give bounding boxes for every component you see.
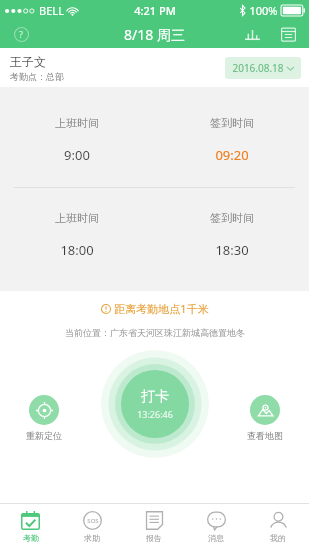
- staticText: 100%: [249, 3, 278, 18]
- staticText: 查看地图: [247, 430, 283, 441]
- staticText: 考勤: [23, 533, 39, 543]
- staticText: 上班时间: [55, 116, 99, 130]
- button[interactable]: 2016.08.18: [225, 57, 301, 79]
- staticText: 考勤点：总部: [10, 71, 64, 82]
- button[interactable]: 打卡: [101, 350, 209, 458]
- staticText: 18:00: [60, 241, 94, 259]
- staticText: 求助: [84, 533, 100, 543]
- button[interactable]: SOS: [61, 504, 123, 550]
- staticText: 2016.08.18: [232, 61, 284, 75]
- staticText: 当前位置：广东省天河区珠江新城高德置地冬: [65, 327, 245, 338]
- button[interactable]: 查看地图: [243, 391, 287, 445]
- staticText: 签到时间: [210, 116, 254, 130]
- staticText: 距离考勤地点1千米: [114, 301, 209, 316]
- staticText: 13:26:46: [137, 408, 173, 420]
- staticText: 报告: [146, 533, 162, 543]
- staticText: 签到时间: [210, 211, 254, 225]
- staticText: 消息: [208, 533, 224, 543]
- staticText: 09:20: [215, 146, 249, 164]
- staticText: BELL: [39, 3, 64, 18]
- staticText: ?: [19, 28, 23, 40]
- button[interactable]: 考勤: [0, 504, 61, 550]
- staticText: 我的: [270, 533, 286, 543]
- button[interactable]: 报告: [123, 504, 185, 550]
- staticText: 打卡: [141, 388, 169, 406]
- staticText: 8/18 周三: [124, 25, 185, 44]
- button[interactable]: 消息: [185, 504, 247, 550]
- button[interactable]: Statistics: [239, 21, 265, 47]
- staticText: 重新定位: [26, 430, 62, 441]
- staticText: SOS: [87, 517, 99, 525]
- staticText: 4:21 PM: [134, 3, 176, 18]
- staticText: 上班时间: [55, 211, 99, 225]
- staticText: 王子文: [10, 54, 46, 69]
- button[interactable]: Calendar: [275, 21, 301, 47]
- button[interactable]: 我的: [247, 504, 309, 550]
- button[interactable]: 重新定位: [22, 391, 66, 445]
- button[interactable]: Help: [8, 21, 34, 47]
- staticText: 18:30: [215, 241, 249, 259]
- staticText: 9:00: [64, 146, 90, 164]
